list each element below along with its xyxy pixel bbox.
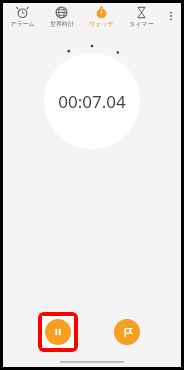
button[interactable]: ウォッチ <box>81 6 121 33</box>
staticText: 世界時計 <box>50 20 74 28</box>
button[interactable]: Pause <box>42 316 74 348</box>
button[interactable]: アラーム <box>3 6 42 33</box>
button[interactable]: Lap <box>114 319 140 345</box>
staticText: アラーム <box>10 20 35 28</box>
button[interactable]: タイマー <box>121 6 161 33</box>
staticText: タイマー <box>129 20 154 28</box>
staticText: 00:07.04 <box>58 90 126 113</box>
staticText: ウォッチ <box>89 20 114 28</box>
button[interactable]: 世界時計 <box>42 6 81 33</box>
button[interactable]: More options <box>161 6 181 33</box>
